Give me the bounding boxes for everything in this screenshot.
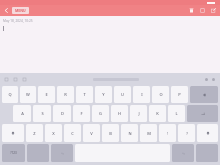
button[interactable]: Toolbar action 3: [21, 76, 28, 83]
staticText: J: [138, 111, 140, 116]
button[interactable]: F: [73, 105, 90, 122]
button[interactable]: P: [171, 86, 188, 103]
staticText: X: [52, 131, 55, 136]
button[interactable]: T: [76, 86, 93, 103]
staticText: ?: [186, 131, 188, 136]
button[interactable]: Shift: [2, 124, 24, 142]
button[interactable]: V: [83, 124, 100, 142]
staticText: W: [26, 92, 30, 97]
staticText: G: [99, 111, 102, 116]
staticText: O: [159, 92, 163, 97]
staticText: !: [167, 131, 168, 136]
staticText: MENU: [15, 8, 26, 13]
button[interactable]: Open in new: [208, 5, 219, 16]
staticText: M: [147, 131, 151, 136]
staticText: Q: [8, 92, 12, 97]
staticText: May 18, 2024, 10:25: [3, 19, 33, 23]
button[interactable]: N: [121, 124, 138, 142]
staticText: F: [80, 111, 83, 116]
button[interactable]: D: [53, 105, 71, 122]
button[interactable]: Toolbar action 1: [3, 76, 10, 83]
staticText: B: [109, 131, 112, 136]
button[interactable]: E: [38, 86, 55, 103]
button[interactable]: H: [111, 105, 128, 122]
staticText: Z: [33, 131, 36, 136]
button[interactable]: M: [140, 124, 157, 142]
button[interactable]: B: [102, 124, 119, 142]
staticText: D: [61, 111, 64, 116]
button[interactable]: C: [64, 124, 81, 142]
button[interactable]: Archive: [197, 5, 208, 16]
button[interactable]: U: [114, 86, 131, 103]
staticText: E: [45, 92, 48, 97]
button[interactable]: Y: [95, 86, 112, 103]
button[interactable]: L: [168, 105, 185, 122]
button[interactable]: ?: [178, 124, 195, 142]
staticText: K: [156, 111, 159, 116]
button[interactable]: MENU: [12, 7, 29, 14]
button[interactable]: K: [149, 105, 166, 122]
staticText: T: [83, 92, 86, 97]
button[interactable]: X: [45, 124, 62, 142]
button[interactable]: Z: [26, 124, 43, 142]
button[interactable]: A: [13, 105, 31, 122]
staticText: Y: [102, 92, 105, 97]
button[interactable]: Q: [2, 86, 18, 103]
button[interactable]: W: [20, 86, 36, 103]
button[interactable]: Enter: [187, 105, 218, 122]
button[interactable]: S: [33, 105, 51, 122]
button[interactable]: R: [57, 86, 74, 103]
staticText: I: [141, 92, 143, 97]
staticText: N: [128, 131, 132, 136]
staticText: ?123: [10, 151, 17, 155]
button[interactable]: Shift right: [197, 124, 218, 142]
button[interactable]: Keyboard option 2: [210, 76, 217, 83]
staticText: L: [175, 111, 178, 116]
button[interactable]: J: [130, 105, 147, 122]
button[interactable]: Toolbar action 2: [12, 76, 19, 83]
button[interactable]: !: [159, 124, 176, 142]
staticText: U: [121, 92, 124, 97]
button[interactable]: Back: [2, 6, 11, 15]
staticText: R: [64, 92, 67, 97]
staticText: H: [118, 111, 121, 116]
staticText: A: [21, 111, 24, 116]
button[interactable]: Keyboard option 1: [203, 76, 210, 83]
button[interactable]: Delete: [186, 5, 197, 16]
button[interactable]: Backspace: [190, 86, 218, 103]
staticText: P: [178, 92, 181, 97]
button[interactable]: I: [133, 86, 150, 103]
button[interactable]: Symbols: [2, 144, 25, 162]
button[interactable]: G: [92, 105, 109, 122]
button[interactable]: O: [152, 86, 169, 103]
staticText: V: [90, 131, 93, 136]
staticText: S: [41, 111, 44, 116]
staticText: C: [71, 131, 74, 136]
